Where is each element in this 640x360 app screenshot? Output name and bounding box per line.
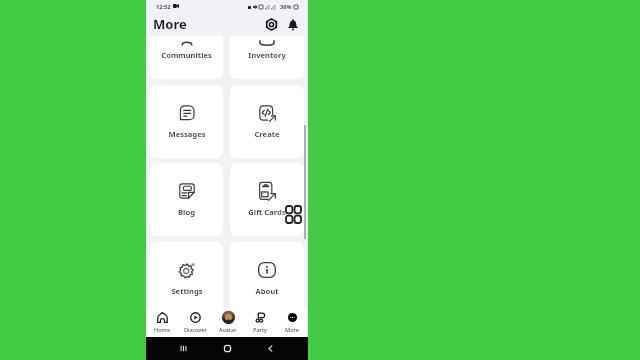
- staticText: More: [285, 326, 300, 333]
- staticText: Messages: [168, 129, 206, 139]
- button[interactable]: Messages: [150, 85, 223, 158]
- button[interactable]: Avatar: [212, 308, 244, 337]
- other: Back: [265, 343, 276, 354]
- button[interactable]: Accessibility menu: [278, 201, 305, 228]
- staticText: Blog: [178, 207, 195, 217]
- button[interactable]: Create: [230, 85, 304, 158]
- button[interactable]: Inventory: [230, 6, 304, 79]
- button[interactable]: Robux balance: [262, 15, 281, 34]
- staticText: Avatar: [219, 326, 237, 333]
- button[interactable]: More: [276, 308, 308, 337]
- staticText: 36%: [280, 3, 292, 11]
- button[interactable]: Party: [244, 308, 276, 337]
- staticText: Inventory: [248, 50, 286, 60]
- staticText: Gift Cards: [248, 207, 286, 217]
- button[interactable]: Gift Cards: [230, 163, 304, 236]
- staticText: Settings: [171, 286, 203, 296]
- other: Recents: [178, 343, 189, 354]
- staticText: About: [255, 286, 279, 296]
- staticText: 12:52: [156, 3, 171, 11]
- staticText: Create: [254, 129, 280, 139]
- staticText: Discover: [184, 326, 207, 333]
- button[interactable]: Settings: [150, 242, 223, 315]
- button[interactable]: Discover: [179, 308, 212, 337]
- staticText: Communities: [161, 50, 212, 60]
- button[interactable]: Blog: [150, 163, 223, 236]
- staticText: Party: [253, 326, 268, 333]
- button[interactable]: Notifications: [283, 15, 302, 34]
- button[interactable]: Communities: [150, 6, 223, 79]
- button[interactable]: About: [230, 242, 304, 315]
- button[interactable]: Home: [146, 308, 179, 337]
- staticText: More: [153, 15, 187, 33]
- other: Home: [222, 343, 233, 354]
- staticText: Home: [154, 326, 171, 333]
